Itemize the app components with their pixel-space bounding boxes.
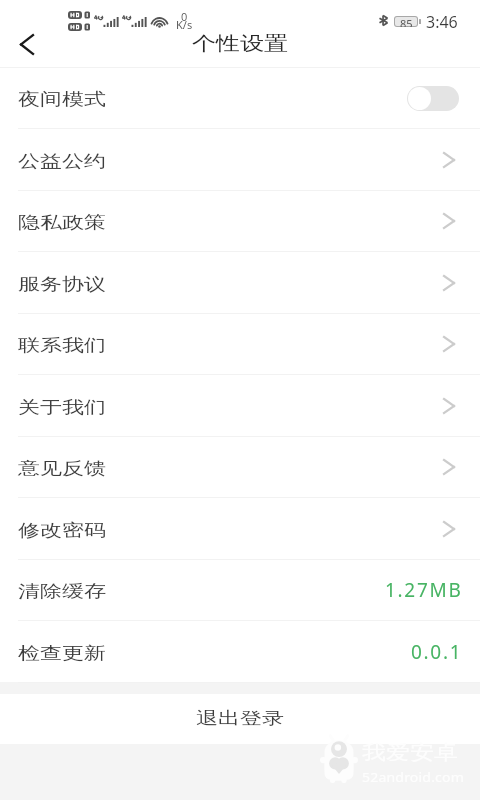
staticText: 夜间模式 [18,89,106,111]
button[interactable]: Open [435,330,463,358]
staticText: 3:46 [426,11,458,33]
staticText: 关于我们 [18,397,106,419]
staticText: 我爱安卓 [362,740,458,764]
staticText: 1.27MB [385,577,463,603]
button[interactable]: 夜间模式 [0,67,480,129]
button[interactable]: Open [435,269,463,297]
staticText: 隐私政策 [18,212,106,234]
button[interactable]: 退出登录 [0,694,480,744]
button[interactable]: 清除缓存 [0,559,480,621]
button[interactable]: 服务协议 [0,252,480,314]
button[interactable]: 意见反馈 [0,436,480,498]
button[interactable]: Back [10,27,44,61]
staticText: 85 [400,16,413,27]
button[interactable]: Open [435,146,463,174]
button[interactable]: Open [435,515,463,543]
staticText: 清除缓存 [18,581,106,603]
staticText: 修改密码 [18,520,106,542]
button[interactable]: Night mode toggle [407,86,459,111]
button[interactable]: 公益公约 [0,129,480,191]
button[interactable]: 隐私政策 [0,190,480,252]
staticText: 52android.com [362,768,464,785]
button[interactable]: Open [435,207,463,235]
staticText: 退出登录 [196,708,284,730]
button[interactable]: 修改密码 [0,498,480,560]
button[interactable]: 检查更新 [0,621,480,683]
staticText: 服务协议 [18,274,106,296]
button[interactable]: 联系我们 [0,313,480,375]
staticText: K/s [176,17,193,32]
button[interactable]: Open [435,392,463,420]
button[interactable]: 关于我们 [0,375,480,437]
button[interactable]: Open [435,453,463,481]
staticText: 检查更新 [18,643,106,665]
staticText: 0.0.1 [411,639,463,665]
staticText: 公益公约 [18,151,106,173]
staticText: 个性设置 [192,32,288,56]
staticText: 联系我们 [18,335,106,357]
staticText: 意见反馈 [18,458,106,480]
staticText: 0 [181,9,188,24]
